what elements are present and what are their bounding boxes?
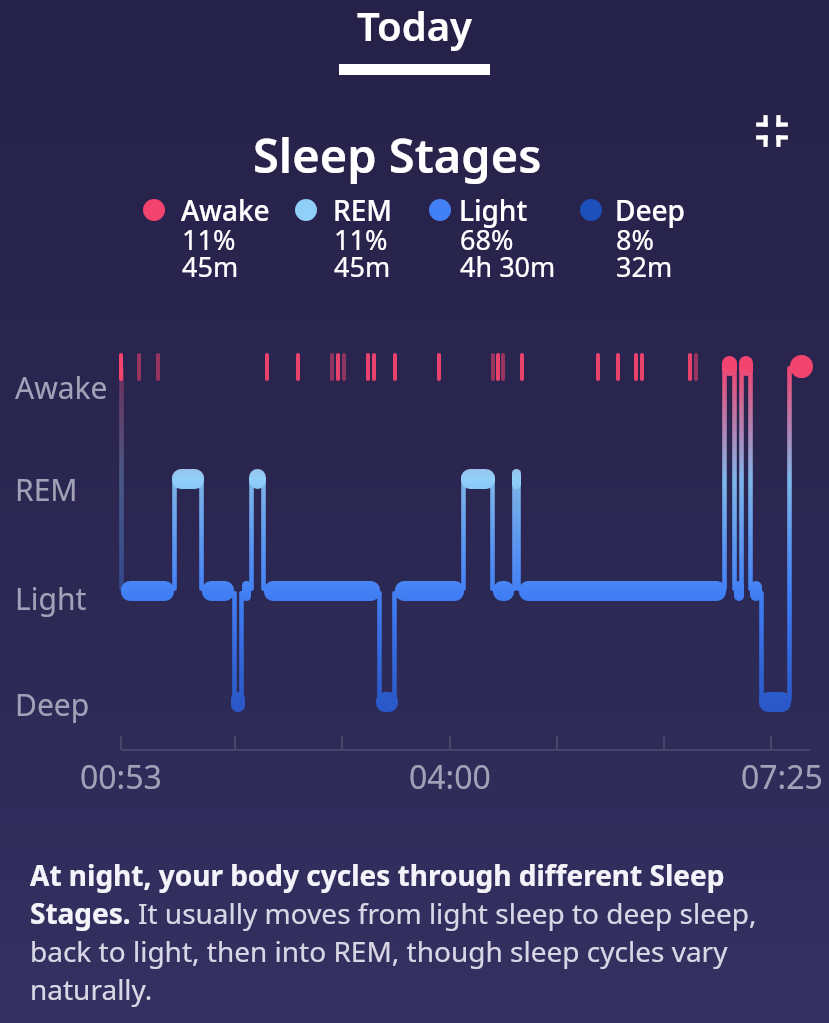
staticText: 07:25 bbox=[741, 755, 823, 799]
staticText: 04:00 bbox=[409, 755, 491, 799]
staticText: Deep bbox=[15, 684, 90, 725]
staticText: Deep bbox=[615, 191, 685, 229]
staticText: Awake bbox=[15, 367, 108, 408]
staticText: 32m bbox=[616, 248, 673, 285]
staticText: 45m bbox=[334, 248, 391, 285]
staticText: 68% bbox=[460, 221, 514, 258]
staticText: REM bbox=[333, 191, 392, 229]
staticText: Light bbox=[15, 578, 87, 619]
staticText: 00:53 bbox=[80, 755, 162, 799]
staticText: 45m bbox=[182, 248, 239, 285]
button[interactable] bbox=[754, 113, 792, 151]
staticText: REM bbox=[15, 469, 78, 510]
staticText: At night, your body cycles through diffe… bbox=[30, 856, 810, 1008]
staticText: Sleep Stages bbox=[253, 123, 542, 187]
staticText: 8% bbox=[616, 221, 654, 258]
staticText: Today bbox=[357, 0, 472, 52]
staticText: Light bbox=[459, 191, 528, 229]
staticText: Awake bbox=[181, 191, 270, 229]
staticText: 11% bbox=[182, 221, 236, 258]
staticText: 4h 30m bbox=[460, 248, 556, 285]
staticText: 11% bbox=[334, 221, 388, 258]
button[interactable]: Today bbox=[0, 0, 829, 80]
